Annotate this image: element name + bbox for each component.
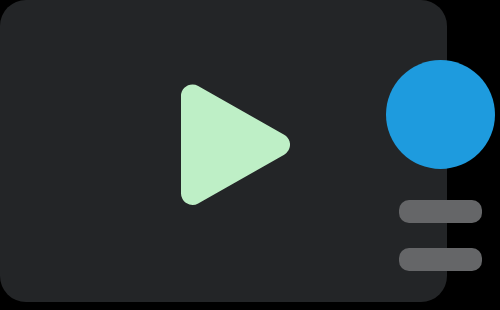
button[interactable]: Record [386,60,495,169]
button[interactable]: Video thumbnail [0,0,447,302]
button[interactable]: Subtitle [399,248,482,271]
button[interactable]: Play [167,63,314,226]
button[interactable]: Title [399,200,482,223]
